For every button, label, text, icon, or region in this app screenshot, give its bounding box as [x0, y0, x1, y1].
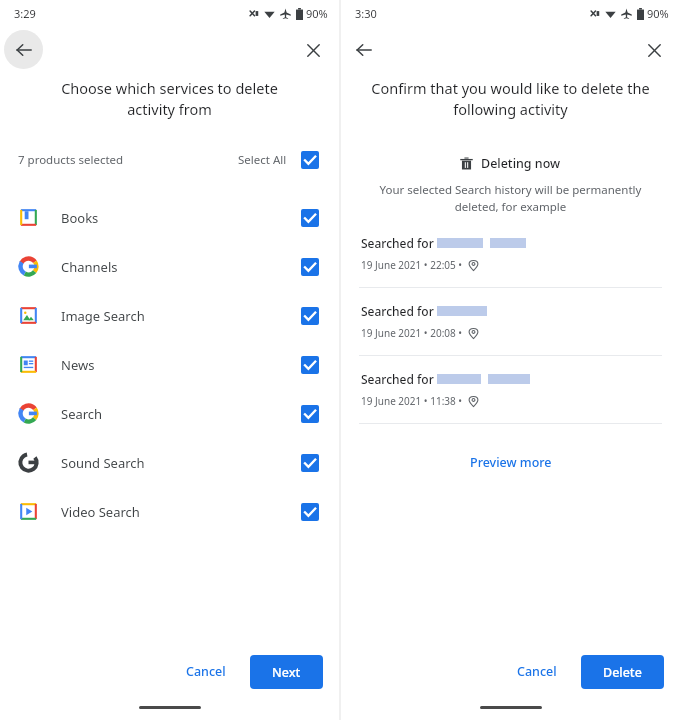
- button[interactable]: Searched for: [345, 235, 676, 303]
- button[interactable]: Channels: [0, 242, 339, 291]
- button[interactable]: Selected: [301, 151, 319, 169]
- staticText: Confirm that you would like to delete th…: [371, 78, 650, 120]
- staticText: Cancel: [186, 663, 226, 680]
- button[interactable]: Close: [637, 33, 671, 67]
- staticText: Searched for: [361, 303, 437, 319]
- staticText: News: [61, 356, 95, 374]
- button[interactable]: Next: [250, 655, 323, 689]
- button[interactable]: Image Search: [0, 291, 339, 340]
- button[interactable]: Cancel: [174, 654, 238, 689]
- button[interactable]: Books: [0, 193, 339, 242]
- button[interactable]: Searched for: [345, 303, 676, 371]
- button[interactable]: Selected: [301, 503, 319, 521]
- button[interactable]: Search: [0, 389, 339, 438]
- staticText: Image Search: [61, 307, 145, 325]
- button[interactable]: Selected: [301, 405, 319, 423]
- button[interactable]: Searched for: [345, 371, 676, 439]
- staticText: Video Search: [61, 503, 140, 521]
- staticText: Cancel: [517, 663, 557, 680]
- staticText: 3:29: [14, 6, 36, 21]
- button[interactable]: Video Search: [0, 487, 339, 536]
- staticText: Preview more: [470, 454, 552, 471]
- staticText: Select All: [238, 152, 287, 168]
- button[interactable]: 7 products selected: [0, 144, 339, 176]
- button[interactable]: Delete: [581, 655, 664, 689]
- staticText: 3:30: [355, 6, 377, 21]
- button[interactable]: Selected: [301, 356, 319, 374]
- button[interactable]: Selected: [301, 209, 319, 227]
- staticText: Next: [272, 664, 301, 681]
- staticText: Your selected Search history will be per…: [367, 182, 654, 215]
- button[interactable]: Selected: [301, 454, 319, 472]
- staticText: Channels: [61, 258, 118, 276]
- staticText: Delete: [603, 664, 642, 681]
- staticText: 19 June 2021 • 11:38 •: [361, 394, 463, 408]
- staticText: Search: [61, 405, 103, 423]
- staticText: Searched for: [361, 371, 437, 387]
- staticText: 19 June 2021 • 20:08 •: [361, 326, 463, 340]
- staticText: Books: [61, 209, 99, 227]
- staticText: 90%: [647, 6, 669, 21]
- button[interactable]: Cancel: [505, 654, 569, 689]
- staticText: Choose which services to delete activity…: [38, 78, 301, 120]
- staticText: Deleting now: [481, 155, 561, 172]
- button[interactable]: Preview more: [345, 439, 676, 485]
- button[interactable]: Back: [4, 30, 43, 69]
- staticText: 7 products selected: [18, 152, 124, 168]
- button[interactable]: Sound Search: [0, 438, 339, 487]
- staticText: 90%: [306, 6, 328, 21]
- staticText: Sound Search: [61, 454, 145, 472]
- button[interactable]: Back: [347, 33, 381, 67]
- staticText: Searched for: [361, 235, 437, 251]
- staticText: 19 June 2021 • 22:05 •: [361, 258, 463, 272]
- button[interactable]: Selected: [301, 307, 319, 325]
- button[interactable]: Close: [296, 33, 330, 67]
- button[interactable]: Selected: [301, 258, 319, 276]
- button[interactable]: News: [0, 340, 339, 389]
